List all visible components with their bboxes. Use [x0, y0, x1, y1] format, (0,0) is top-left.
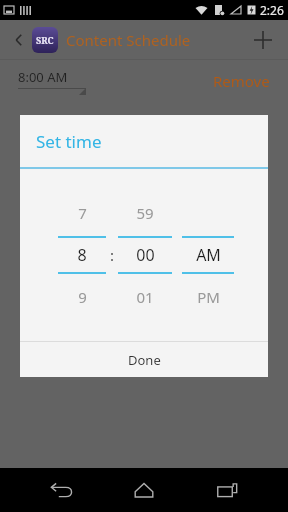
button[interactable]: Home	[122, 468, 166, 512]
button[interactable]: Remove	[213, 71, 270, 91]
button[interactable]: Back	[6, 27, 32, 53]
staticText: 9	[78, 287, 87, 307]
button[interactable]: 01	[118, 280, 172, 314]
button[interactable]: Back	[39, 468, 83, 512]
staticText: Content Schedule	[66, 30, 191, 50]
staticText: 59	[136, 203, 154, 223]
button[interactable]: 8:00 AM	[18, 68, 86, 95]
button[interactable]: Add	[246, 23, 280, 57]
button[interactable]: 00	[118, 238, 172, 272]
staticText: Remove	[213, 71, 270, 91]
button[interactable]: 59	[118, 196, 172, 230]
staticText: :	[110, 245, 115, 265]
staticText: 00	[136, 244, 155, 266]
staticText: AM	[196, 244, 221, 266]
staticText: Set time	[36, 130, 102, 153]
staticText: 8:00 AM	[18, 68, 68, 86]
button[interactable]: AM	[182, 238, 234, 272]
staticText: Done	[128, 351, 161, 369]
button[interactable]: 7	[58, 196, 106, 230]
button[interactable]: PM	[182, 280, 234, 314]
button[interactable]: 9	[58, 280, 106, 314]
button[interactable]: Done	[20, 342, 268, 377]
staticText: 01	[136, 287, 154, 307]
staticText: 2:26	[260, 2, 284, 18]
staticText: 8	[77, 244, 87, 266]
button[interactable]: 8	[58, 238, 106, 272]
staticText: SRC	[36, 34, 54, 46]
button[interactable]: Recent apps	[205, 468, 249, 512]
staticText: PM	[197, 287, 220, 307]
staticText: 7	[78, 203, 87, 223]
